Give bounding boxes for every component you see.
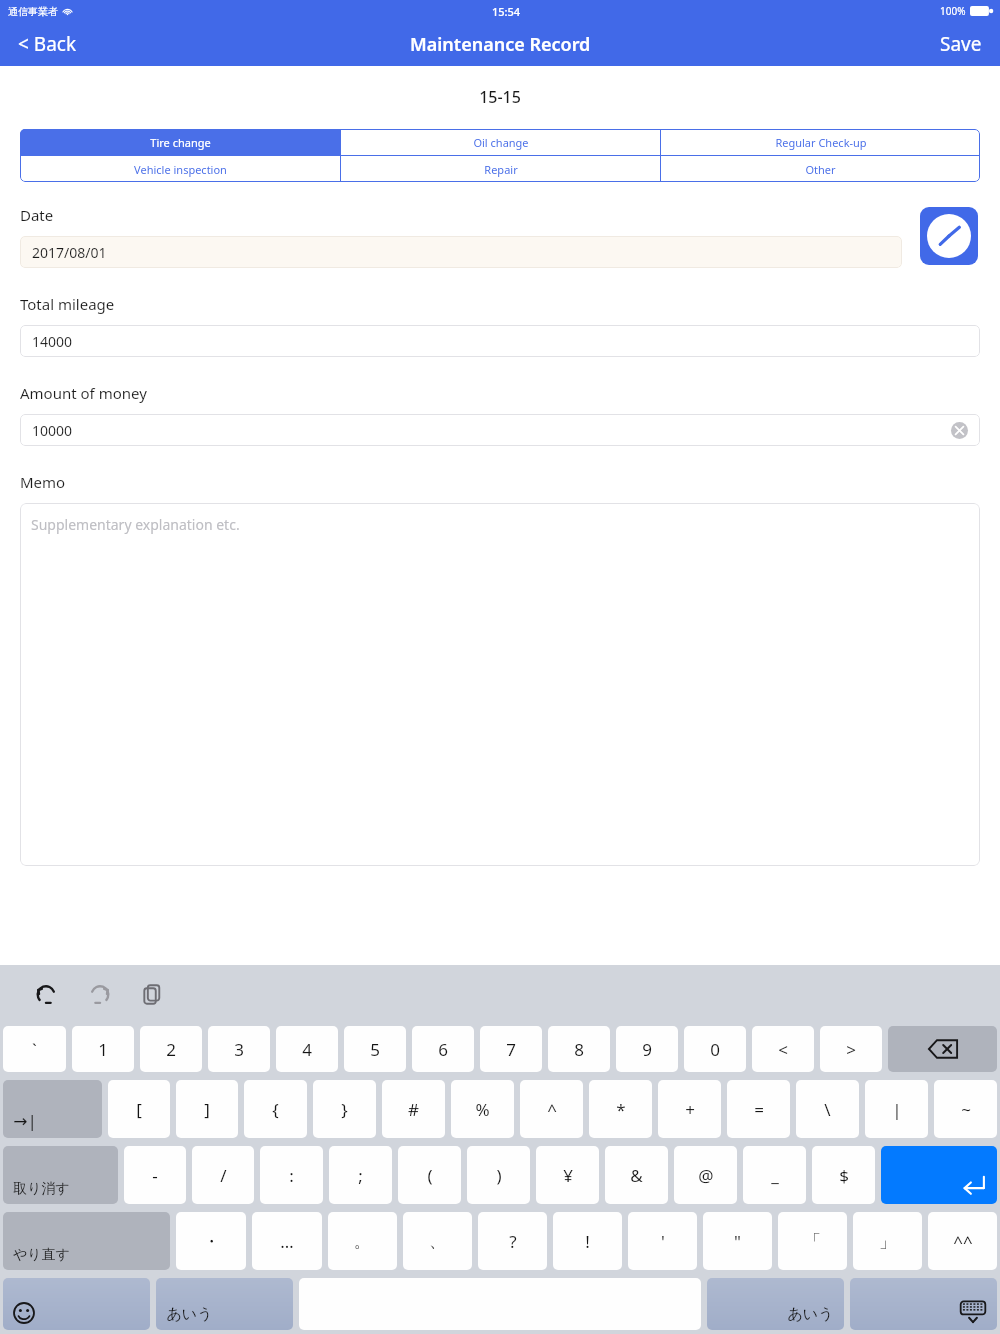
button[interactable]: # [382, 1080, 445, 1138]
button[interactable]: { [244, 1080, 307, 1138]
button[interactable]: - [124, 1146, 186, 1204]
button[interactable]: Pick time [920, 207, 978, 265]
button[interactable]: + [658, 1080, 721, 1138]
button[interactable]: 2 [140, 1026, 202, 1072]
other: Hide keyboard [959, 1300, 987, 1324]
button[interactable]: \ [796, 1080, 859, 1138]
button[interactable]: % [451, 1080, 514, 1138]
button[interactable]: Clear text [951, 422, 968, 439]
button[interactable]: 14000 [20, 325, 980, 357]
button[interactable]: →| [3, 1080, 102, 1138]
staticText: Amount of money [20, 383, 147, 403]
staticText: & [630, 1164, 643, 1187]
button[interactable]: ¥ [536, 1146, 599, 1204]
other: Emoji [13, 1302, 35, 1324]
staticText: 」 [879, 1231, 896, 1252]
button[interactable]: ~ [934, 1080, 997, 1138]
button[interactable]: Oil change [341, 129, 660, 155]
button[interactable]: [ [108, 1080, 170, 1138]
button[interactable]: Emoji [3, 1278, 150, 1330]
staticText: Regular Check-up [775, 135, 867, 150]
button[interactable]: Tire change [20, 129, 340, 155]
button[interactable]: = [727, 1080, 790, 1138]
button[interactable]: _ [743, 1146, 806, 1204]
button[interactable]: 6 [412, 1026, 474, 1072]
button[interactable]: 1 [72, 1026, 134, 1072]
button[interactable]: < Back [0, 23, 95, 65]
button[interactable]: 「 [778, 1212, 847, 1270]
button[interactable]: 2017/08/01 [20, 236, 902, 268]
button[interactable]: ) [467, 1146, 530, 1204]
button[interactable]: } [313, 1080, 376, 1138]
button[interactable]: Paste [132, 972, 176, 1016]
button[interactable]: : [260, 1146, 323, 1204]
button[interactable]: 7 [480, 1026, 542, 1072]
staticText: ^^ [953, 1230, 973, 1253]
button[interactable]: Redo [78, 972, 122, 1016]
staticText: [ [136, 1098, 142, 1121]
button[interactable]: Other [661, 156, 980, 182]
button[interactable]: 3 [208, 1026, 270, 1072]
staticText: ` [32, 1038, 37, 1061]
button[interactable]: < [752, 1026, 814, 1072]
button[interactable]: 」 [853, 1212, 922, 1270]
button[interactable]: あいう [156, 1278, 293, 1330]
button[interactable]: $ [812, 1146, 875, 1204]
button[interactable]: Save [922, 23, 1000, 65]
button[interactable]: 9 [616, 1026, 678, 1072]
button[interactable]: やり直す [3, 1212, 170, 1270]
staticText: … [280, 1230, 294, 1253]
button[interactable]: ( [398, 1146, 461, 1204]
button[interactable]: ] [176, 1080, 238, 1138]
button[interactable]: ` [3, 1026, 66, 1072]
button[interactable]: ^^ [928, 1212, 997, 1270]
button[interactable]: ' [628, 1212, 697, 1270]
button[interactable]: ? [478, 1212, 547, 1270]
staticText: 15:54 [492, 4, 521, 19]
button[interactable]: Hide keyboard [850, 1278, 997, 1330]
staticText: - [152, 1164, 158, 1187]
staticText: ¥ [563, 1164, 573, 1187]
button[interactable]: Backspace [888, 1026, 997, 1072]
staticText: やり直す [13, 1246, 70, 1264]
button[interactable]: Regular Check-up [661, 129, 980, 155]
staticText: $ [839, 1164, 849, 1187]
button[interactable]: 取り消す [3, 1146, 118, 1204]
button[interactable]: 。 [328, 1212, 397, 1270]
staticText: 「 [804, 1231, 821, 1252]
button[interactable]: 10000 [20, 414, 980, 446]
button[interactable]: Return [881, 1146, 997, 1204]
button[interactable]: * [589, 1080, 652, 1138]
button[interactable]: Repair [341, 156, 660, 182]
button[interactable]: Vehicle inspection [20, 156, 340, 182]
button[interactable]: > [820, 1026, 882, 1072]
button[interactable]: ^ [520, 1080, 583, 1138]
staticText: あいう [166, 1305, 213, 1324]
staticText: : [289, 1164, 294, 1187]
button[interactable]: 、 [403, 1212, 472, 1270]
button[interactable]: ! [553, 1212, 622, 1270]
staticText: ) [496, 1164, 502, 1187]
button[interactable]: … [252, 1212, 322, 1270]
button[interactable]: @ [674, 1146, 737, 1204]
button[interactable]: 5 [344, 1026, 406, 1072]
button[interactable]: | [865, 1080, 928, 1138]
button[interactable]: / [192, 1146, 254, 1204]
button[interactable]: ; [329, 1146, 392, 1204]
button[interactable]: 0 [684, 1026, 746, 1072]
button[interactable]: 8 [548, 1026, 610, 1072]
button[interactable]: あいう [707, 1278, 844, 1330]
button[interactable]: ・ [176, 1212, 246, 1270]
staticText: 14000 [32, 332, 73, 351]
other: Return [961, 1172, 987, 1198]
button[interactable]: Supplementary explanation etc. [20, 503, 980, 866]
staticText: > [846, 1038, 856, 1061]
staticText: 。 [354, 1231, 371, 1252]
button[interactable]: 4 [276, 1026, 338, 1072]
button[interactable]: & [605, 1146, 668, 1204]
staticText: { [272, 1098, 279, 1121]
button[interactable]: " [703, 1212, 772, 1270]
staticText: " [734, 1230, 741, 1253]
button[interactable]: Undo [24, 972, 68, 1016]
